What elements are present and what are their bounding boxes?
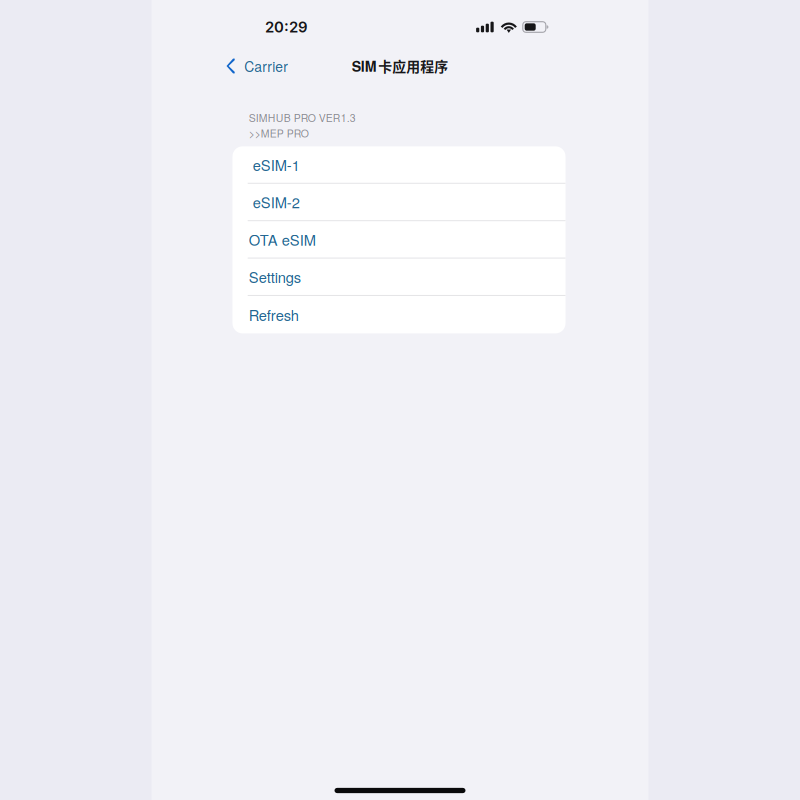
staticText: SIM (352, 56, 377, 76)
button[interactable]: Refresh (232, 296, 565, 333)
staticText: SIMHUB PRO VER1.3 (249, 110, 356, 125)
button[interactable]: OTA eSIM (232, 221, 565, 259)
button[interactable]: Carrier (151, 50, 298, 82)
staticText: OTA eSIM (249, 229, 316, 250)
button[interactable]: Settings (232, 259, 565, 296)
staticText: 20:29 (265, 18, 308, 36)
staticText: Settings (249, 266, 301, 287)
staticText: Refresh (249, 304, 299, 325)
staticText: >>MEP PRO (249, 125, 309, 140)
staticText: 卡应用程序 (378, 56, 448, 76)
staticText: Carrier (244, 56, 288, 76)
staticText: eSIM-1 (249, 154, 300, 175)
button[interactable]: eSIM-1 (232, 146, 565, 184)
button[interactable]: eSIM-2 (232, 184, 565, 221)
staticText: eSIM-2 (249, 191, 300, 212)
